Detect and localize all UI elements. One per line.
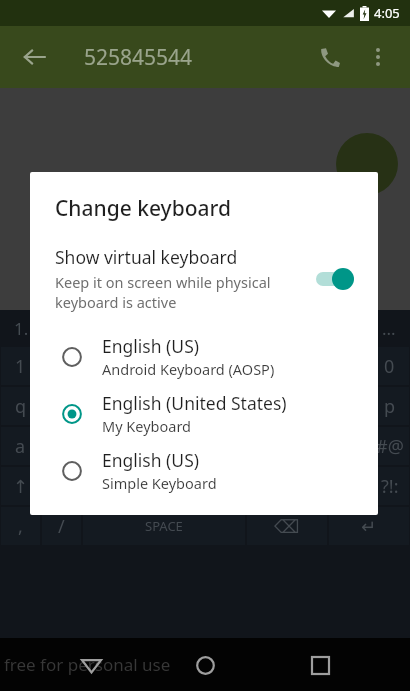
staticText: f	[140, 434, 147, 459]
staticText: g	[179, 434, 191, 459]
staticText: Android Keyboard (AOSP)	[102, 359, 275, 379]
button[interactable]: Back	[10, 33, 58, 81]
button[interactable]: #@	[370, 427, 409, 465]
button[interactable]: SPACE	[83, 507, 245, 545]
button[interactable]: p	[370, 387, 409, 425]
button[interactable]: ↑	[1, 467, 40, 505]
button[interactable]: x	[83, 467, 122, 505]
staticText: English (US)	[102, 334, 199, 358]
staticText: free for personal use	[4, 653, 171, 676]
button[interactable]: Call	[306, 33, 354, 81]
button[interactable]: w	[42, 387, 81, 425]
staticText: r	[140, 394, 148, 419]
button[interactable]: g	[165, 427, 204, 465]
button[interactable]: 5	[165, 347, 204, 385]
staticText: e	[97, 394, 108, 419]
button[interactable]: s	[42, 427, 81, 465]
button[interactable]: u	[247, 387, 286, 425]
button[interactable]: a	[1, 427, 40, 465]
button[interactable]: ?!:	[370, 467, 409, 505]
staticText: ↵	[361, 516, 377, 537]
staticText: q	[15, 394, 27, 419]
button[interactable]: 1	[1, 347, 40, 385]
staticText: 7	[261, 354, 272, 379]
staticText: Change keyboard	[55, 194, 232, 223]
staticText: y	[221, 394, 231, 419]
button[interactable]: English (US)	[30, 442, 378, 499]
button[interactable]: 2	[42, 347, 81, 385]
staticText: d	[97, 434, 109, 459]
staticText: 6	[220, 354, 231, 379]
button[interactable]: c	[124, 467, 163, 505]
button[interactable]: English (United States)	[30, 385, 378, 442]
staticText: 525845544	[84, 43, 193, 72]
button[interactable]: 3	[83, 347, 122, 385]
button[interactable]: /	[42, 507, 81, 545]
button[interactable]: English (US)	[30, 328, 378, 385]
button[interactable]: ⌫	[247, 507, 327, 545]
button[interactable]: Home	[181, 641, 229, 689]
staticText: c	[139, 474, 148, 499]
button[interactable]: y	[206, 387, 245, 425]
staticText: 2	[56, 354, 67, 379]
staticText: 5	[179, 354, 190, 379]
button[interactable]: Recents	[296, 641, 344, 689]
button[interactable]: v	[165, 467, 204, 505]
button[interactable]: 0	[370, 347, 409, 385]
staticText: w	[54, 394, 69, 419]
button[interactable]: 4	[124, 347, 163, 385]
staticText: v	[180, 474, 190, 499]
button[interactable]: ,	[1, 507, 40, 545]
button[interactable]: e	[83, 387, 122, 425]
button[interactable]: q	[1, 387, 40, 425]
button[interactable]: Show virtual keyboard	[30, 245, 378, 312]
staticText: 4	[138, 354, 149, 379]
staticText: Simple Keyboard	[102, 473, 217, 493]
staticText: Show virtual keyboard	[55, 245, 238, 269]
staticText: 4:05	[374, 4, 400, 22]
button[interactable]: f	[124, 427, 163, 465]
staticText: t	[181, 394, 188, 419]
button[interactable]: b	[206, 467, 245, 505]
button[interactable]: d	[83, 427, 122, 465]
staticText: ⌫	[274, 516, 300, 537]
staticText: 1.	[14, 317, 29, 340]
button[interactable]: 7	[247, 347, 286, 385]
button[interactable]: More options	[354, 33, 402, 81]
button[interactable]: 6	[206, 347, 245, 385]
staticText: #@	[376, 434, 404, 459]
staticText: p	[384, 394, 396, 419]
button[interactable]: ↵	[329, 507, 409, 545]
button[interactable]: z	[42, 467, 81, 505]
staticText: a	[15, 434, 26, 459]
staticText: SPACE	[145, 517, 183, 535]
button[interactable]: t	[165, 387, 204, 425]
button[interactable]: r	[124, 387, 163, 425]
staticText: 3	[97, 354, 108, 379]
button[interactable]: Back	[67, 641, 115, 689]
staticText: ,	[18, 514, 23, 539]
